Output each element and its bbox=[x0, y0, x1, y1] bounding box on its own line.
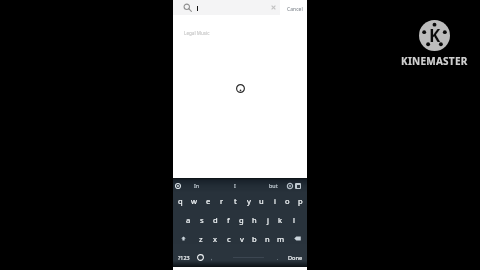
staticText: r bbox=[220, 196, 224, 206]
button[interactable]: w bbox=[187, 192, 201, 210]
button[interactable]: h bbox=[248, 210, 261, 229]
button[interactable]: Settings bbox=[285, 181, 294, 190]
button[interactable]: ?123 bbox=[173, 248, 195, 267]
staticText: p bbox=[298, 196, 303, 206]
button[interactable]: Clipboard bbox=[293, 181, 302, 190]
button[interactable]: g bbox=[235, 210, 248, 229]
staticText: o bbox=[285, 196, 290, 206]
button[interactable]: Clear bbox=[269, 3, 278, 12]
button[interactable]: x bbox=[208, 229, 222, 248]
staticText: Legal Music bbox=[184, 30, 210, 36]
staticText: x bbox=[213, 234, 218, 244]
button[interactable]: Backspace bbox=[287, 229, 307, 248]
staticText: s bbox=[200, 215, 204, 225]
button[interactable]: Space bbox=[218, 248, 272, 267]
staticText: e bbox=[206, 196, 211, 206]
staticText: j bbox=[267, 215, 269, 225]
button[interactable]: r bbox=[215, 192, 229, 210]
button[interactable]: u bbox=[255, 192, 268, 210]
staticText: f bbox=[227, 215, 230, 225]
staticText: Done bbox=[288, 254, 303, 262]
staticText: q bbox=[178, 196, 183, 206]
staticText: . bbox=[277, 254, 279, 261]
staticText: In bbox=[194, 182, 200, 189]
button[interactable]: Voice input bbox=[173, 181, 182, 190]
staticText: n bbox=[265, 234, 270, 244]
staticText: a bbox=[186, 215, 191, 225]
button[interactable]: s bbox=[195, 210, 209, 229]
button[interactable]: Cancel bbox=[280, 0, 307, 15]
staticText: I bbox=[234, 182, 236, 189]
staticText: but bbox=[269, 182, 278, 189]
button[interactable]: In bbox=[188, 178, 206, 192]
staticText: b bbox=[252, 234, 257, 244]
button[interactable]: I bbox=[226, 178, 244, 192]
staticText: h bbox=[252, 215, 257, 225]
button[interactable]: v bbox=[235, 229, 248, 248]
staticText: k bbox=[278, 215, 283, 225]
staticText: c bbox=[227, 234, 231, 244]
button[interactable]: t bbox=[229, 192, 242, 210]
staticText: KINEMASTER bbox=[401, 54, 468, 68]
staticText: , bbox=[211, 254, 213, 261]
staticText: w bbox=[191, 196, 197, 206]
button[interactable]: Done bbox=[284, 248, 307, 267]
button[interactable]: q bbox=[173, 192, 187, 210]
staticText: d bbox=[213, 215, 218, 225]
button[interactable]: z bbox=[194, 229, 208, 248]
staticText: m bbox=[277, 234, 285, 244]
button[interactable]: m bbox=[274, 229, 287, 248]
button[interactable]: Shift bbox=[173, 229, 194, 248]
button[interactable]: p bbox=[294, 192, 307, 210]
button[interactable]: o bbox=[281, 192, 294, 210]
staticText: Cancel bbox=[287, 6, 303, 13]
button[interactable]: b bbox=[248, 229, 261, 248]
button[interactable]: j bbox=[261, 210, 274, 229]
button[interactable]: f bbox=[222, 210, 235, 229]
button[interactable]: l bbox=[287, 210, 300, 229]
button[interactable]: . bbox=[272, 248, 284, 267]
staticText: ?123 bbox=[178, 254, 190, 261]
staticText: l bbox=[293, 215, 295, 225]
button[interactable]: k bbox=[274, 210, 287, 229]
staticText: u bbox=[259, 196, 264, 206]
other: Search bbox=[183, 3, 192, 12]
button[interactable]: e bbox=[201, 192, 215, 210]
button[interactable]: y bbox=[242, 192, 255, 210]
button[interactable]: Emoji bbox=[195, 248, 206, 267]
button[interactable]: , bbox=[206, 248, 218, 267]
button[interactable]: Search bbox=[173, 0, 280, 15]
button[interactable]: a bbox=[181, 210, 195, 229]
staticText: y bbox=[247, 196, 251, 206]
button[interactable]: but bbox=[264, 178, 282, 192]
staticText: v bbox=[240, 234, 244, 244]
staticText: g bbox=[239, 215, 244, 225]
button[interactable]: d bbox=[209, 210, 222, 229]
button[interactable]: c bbox=[222, 229, 235, 248]
staticText: K bbox=[429, 24, 441, 47]
button[interactable]: n bbox=[261, 229, 274, 248]
button[interactable]: i bbox=[268, 192, 281, 210]
staticText: z bbox=[199, 234, 203, 244]
staticText: i bbox=[274, 196, 276, 206]
staticText: t bbox=[234, 196, 237, 206]
